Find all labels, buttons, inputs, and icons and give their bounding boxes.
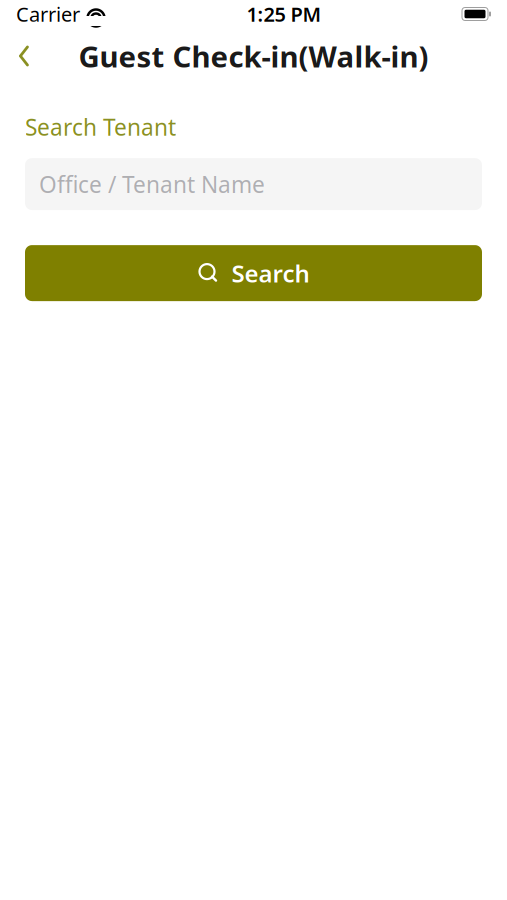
button[interactable]: Back xyxy=(0,34,48,78)
staticText: Search Tenant xyxy=(25,112,176,142)
staticText: 1:25 PM xyxy=(246,1,321,27)
staticText: Guest Check-in(Walk-in) xyxy=(78,36,428,75)
button[interactable]: Search xyxy=(25,245,482,301)
staticText: Carrier xyxy=(16,1,80,27)
staticText: Search xyxy=(231,257,309,289)
button[interactable]: Office / Tenant Name xyxy=(25,158,482,210)
staticText: Office / Tenant Name xyxy=(39,169,265,199)
